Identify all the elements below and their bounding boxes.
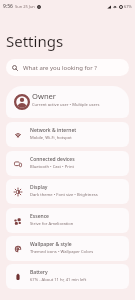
staticText: Essence — [30, 213, 49, 220]
button[interactable]: Battery — [6, 264, 129, 289]
staticText: Current active user • Multiple users — [32, 102, 100, 108]
staticText: Wallpaper & style — [30, 241, 72, 248]
button[interactable]: Owner — [6, 86, 129, 118]
staticText: Connected devices — [30, 156, 75, 163]
button[interactable]: Connected devices — [6, 151, 129, 176]
staticText: Sun 25 Jun — [15, 4, 35, 9]
staticText: 67% — [124, 4, 132, 9]
staticText: Owner — [32, 91, 57, 101]
staticText: 67% - About 11 hr, 41 min left — [30, 277, 87, 283]
staticText: Battery — [30, 269, 48, 276]
staticText: Themed icons • Wallpaper Colors — [30, 249, 94, 255]
staticText: Settings — [6, 31, 64, 51]
button[interactable]: What are you looking for ? — [6, 59, 129, 76]
staticText: What are you looking for ? — [23, 64, 97, 72]
staticText: Strive for Amelioration — [30, 221, 74, 227]
button[interactable]: Essence — [6, 208, 129, 233]
staticText: 9:56 — [3, 3, 13, 10]
staticText: Bluetooth • Cast • Print — [30, 164, 74, 170]
staticText: Display — [30, 184, 48, 191]
staticText: Mobile, Wi-Fi, hotspot — [30, 135, 72, 141]
staticText: Dark theme • Font size • Brightness — [30, 192, 98, 198]
other: Settings gear — [37, 5, 41, 9]
button[interactable]: Wallpaper & style — [6, 236, 129, 261]
button[interactable]: Display — [6, 179, 129, 204]
button[interactable]: Network & internet — [6, 122, 129, 147]
staticText: Network & internet — [30, 127, 77, 134]
